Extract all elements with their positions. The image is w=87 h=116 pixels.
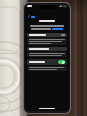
button[interactable]: Toggle (27, 59, 67, 65)
button[interactable] (52, 28, 63, 30)
button[interactable]: Toggle (58, 60, 65, 64)
button[interactable] (27, 47, 67, 51)
button[interactable]: Back (27, 14, 36, 19)
button[interactable] (27, 33, 67, 37)
